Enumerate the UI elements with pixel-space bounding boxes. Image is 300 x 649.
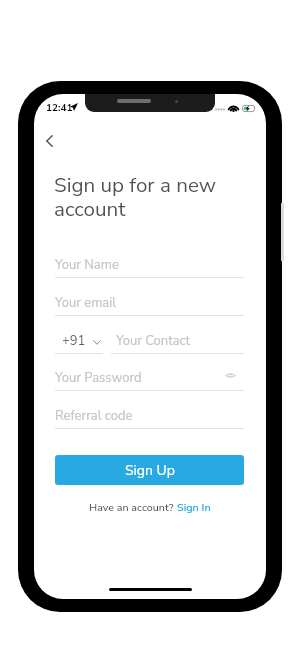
button[interactable]: Your Password <box>55 366 244 391</box>
staticText: Your Name <box>55 256 119 274</box>
staticText: Your Password <box>55 369 142 387</box>
staticText: Sign up for a new account <box>54 171 232 223</box>
staticText: Have an account? <box>89 500 177 515</box>
staticText: Sign In <box>177 500 211 515</box>
button[interactable]: Sign Up <box>55 455 244 485</box>
staticText: Your Contact <box>116 332 191 350</box>
staticText: Sign Up <box>125 461 175 480</box>
button[interactable]: Your Contact <box>111 329 244 354</box>
staticText: Your email <box>55 294 117 312</box>
button[interactable]: Your Name <box>55 253 244 278</box>
staticText: 12:41 <box>46 101 73 115</box>
button[interactable]: Your email <box>55 291 244 316</box>
button[interactable]: Sign In <box>177 500 211 515</box>
staticText: +91 <box>62 332 86 350</box>
staticText: Referral code <box>55 407 133 425</box>
button[interactable]: Country code +91 <box>55 329 103 354</box>
button[interactable]: Referral code <box>55 404 244 429</box>
button[interactable]: Back <box>34 125 65 157</box>
